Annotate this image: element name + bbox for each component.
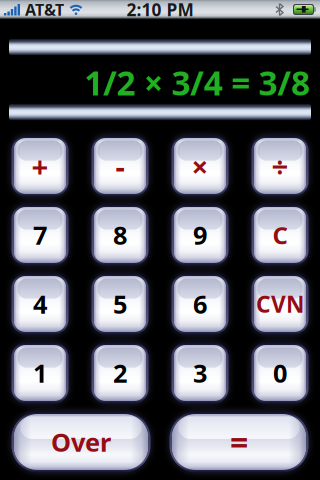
staticText: 6: [193, 287, 207, 321]
staticText: CVN: [256, 289, 304, 319]
staticText: -: [115, 146, 124, 185]
staticText: C: [272, 219, 287, 251]
button[interactable]: +: [11, 135, 68, 196]
button[interactable]: 5: [91, 273, 148, 334]
button[interactable]: 7: [11, 204, 68, 265]
button[interactable]: 0: [251, 342, 308, 403]
button[interactable]: Over: [11, 411, 150, 472]
staticText: +: [31, 146, 48, 185]
staticText: ×: [191, 146, 208, 185]
staticText: 7: [33, 218, 47, 252]
staticText: 1: [33, 356, 47, 390]
staticText: 1/2 × 3/4 = 3/8: [84, 60, 310, 105]
button[interactable]: 1: [11, 342, 68, 403]
staticText: 5: [113, 287, 127, 321]
button[interactable]: -: [91, 135, 148, 196]
button[interactable]: 3: [171, 342, 228, 403]
button[interactable]: 2: [91, 342, 148, 403]
staticText: 3: [193, 356, 207, 390]
staticText: 8: [113, 218, 127, 252]
staticText: Over: [51, 425, 111, 459]
button[interactable]: 4: [11, 273, 68, 334]
button[interactable]: 6: [171, 273, 228, 334]
button[interactable]: CVN: [251, 273, 308, 334]
staticText: 2: [113, 356, 127, 390]
button[interactable]: ×: [171, 135, 228, 196]
button[interactable]: =: [169, 411, 308, 472]
button[interactable]: C: [251, 204, 308, 265]
staticText: 9: [193, 218, 207, 252]
staticText: 0: [273, 356, 287, 390]
button[interactable]: ÷: [251, 135, 308, 196]
staticText: ÷: [271, 146, 288, 185]
staticText: AT&T: [25, 0, 64, 20]
staticText: 2:10 PM: [126, 0, 193, 21]
staticText: 4: [33, 287, 47, 321]
staticText: =: [230, 421, 248, 463]
button[interactable]: 9: [171, 204, 228, 265]
button[interactable]: 8: [91, 204, 148, 265]
